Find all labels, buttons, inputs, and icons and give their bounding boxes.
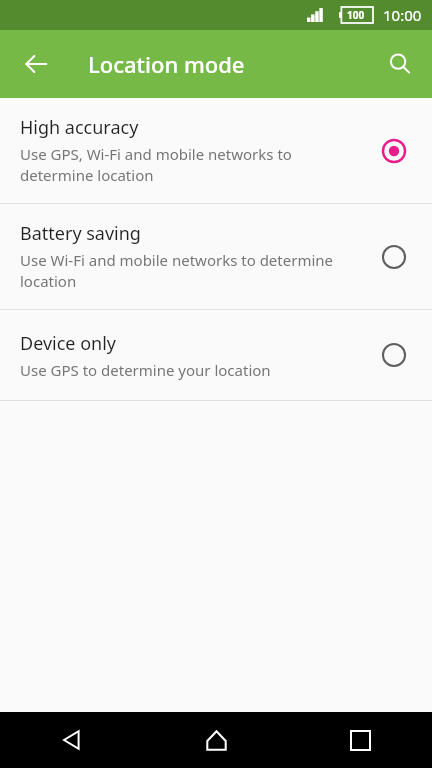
button[interactable]: Battery saving xyxy=(0,204,432,309)
button[interactable]: Back xyxy=(14,42,58,86)
staticText: 10:00 xyxy=(383,5,422,25)
button[interactable]: Device only xyxy=(0,310,432,400)
button[interactable]: Back xyxy=(0,712,144,768)
button[interactable]: Search xyxy=(378,42,422,86)
staticText: Device only xyxy=(20,331,117,356)
button[interactable]: Recents xyxy=(288,712,432,768)
staticText: High accuracy xyxy=(20,115,139,140)
staticText: Location mode xyxy=(88,49,245,79)
staticText: Use GPS to determine your location xyxy=(20,360,271,380)
button[interactable]: Home xyxy=(144,712,288,768)
button[interactable]: High accuracy xyxy=(0,98,432,203)
staticText: Battery saving xyxy=(20,221,141,246)
staticText: 100 xyxy=(347,8,365,22)
staticText: Use GPS, Wi-Fi and mobile networks to de… xyxy=(20,144,292,186)
staticText: Use Wi-Fi and mobile networks to determi… xyxy=(20,250,334,292)
